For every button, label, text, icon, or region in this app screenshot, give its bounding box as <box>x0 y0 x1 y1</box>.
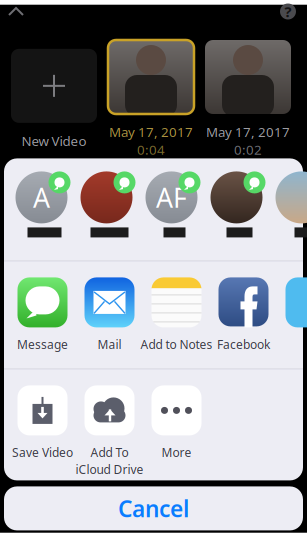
button[interactable]: A <box>12 161 77 235</box>
staticText: 0:02 <box>234 141 262 158</box>
staticText: More <box>161 444 191 460</box>
button[interactable]: Cancel <box>4 486 303 530</box>
staticText: Facebook <box>217 336 270 352</box>
button[interactable] <box>277 277 307 349</box>
staticText: Save Video <box>12 444 73 460</box>
staticText: Add to Notes <box>140 336 212 352</box>
staticText: ? <box>284 2 291 21</box>
staticText: New Video <box>21 132 86 150</box>
staticText: iCloud Drive <box>75 461 143 477</box>
button[interactable]: Mail <box>76 277 143 349</box>
button[interactable] <box>207 161 272 235</box>
button[interactable]: Message <box>9 277 76 349</box>
button[interactable]: AF <box>142 161 207 235</box>
button[interactable]: Collapse <box>0 0 42 23</box>
button[interactable]: Facebook <box>210 277 277 349</box>
button[interactable]: Save Video <box>9 385 76 471</box>
button[interactable] <box>77 161 142 235</box>
button[interactable]: Help <box>276 0 307 23</box>
button[interactable] <box>108 40 194 114</box>
staticText: AF <box>156 180 187 215</box>
staticText: Message <box>17 336 68 352</box>
button[interactable]: Add To <box>76 385 143 471</box>
staticText: A <box>33 180 50 215</box>
staticText: Mail <box>97 336 121 352</box>
button[interactable] <box>272 161 307 235</box>
staticText: May 17, 2017 <box>206 123 290 141</box>
staticText: Cancel <box>118 493 189 523</box>
staticText: Add To <box>90 444 128 460</box>
button[interactable]: More <box>143 385 210 471</box>
button[interactable] <box>11 49 97 123</box>
staticText: 0:04 <box>137 141 165 158</box>
staticText: May 17, 2017 <box>109 123 193 141</box>
button[interactable] <box>205 40 291 114</box>
button[interactable]: Add to Notes <box>143 277 210 349</box>
